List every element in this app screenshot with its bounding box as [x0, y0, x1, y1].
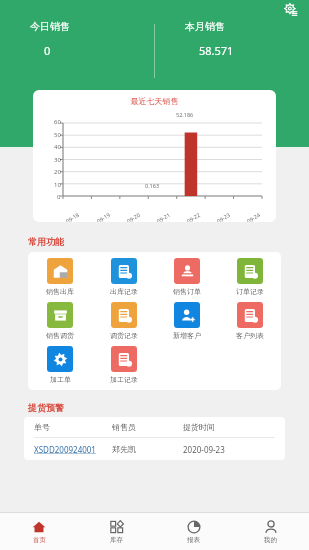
staticText: 本月销售 — [185, 20, 225, 33]
staticText: 09-18 — [64, 211, 81, 222]
button[interactable]: 今日销售 — [0, 20, 154, 58]
button[interactable]: 库存 — [78, 513, 155, 550]
button[interactable]: 销售订单 — [155, 258, 218, 296]
staticText: 今日销售 — [30, 20, 70, 33]
staticText: 0 — [57, 193, 61, 201]
staticText: 58.571 — [199, 43, 234, 58]
staticText: 库存 — [110, 536, 123, 544]
staticText: 我的 — [264, 536, 277, 544]
button[interactable]: 首页 — [0, 513, 78, 550]
button[interactable]: 加工单 — [28, 346, 92, 384]
button[interactable]: 本月销售 — [155, 20, 309, 58]
staticText: 常用功能 — [28, 236, 64, 247]
staticText: 订单记录 — [236, 287, 264, 296]
staticText: 09-21 — [155, 211, 172, 222]
button[interactable]: 订单记录 — [218, 258, 281, 296]
button[interactable]: XSDD200924001 — [34, 438, 275, 460]
staticText: 09-19 — [95, 211, 112, 222]
button[interactable]: Settings — [281, 0, 301, 20]
staticText: 40 — [54, 143, 61, 151]
staticText: 销售员 — [112, 422, 183, 432]
staticText: 销售调货 — [46, 331, 74, 340]
button[interactable]: 加工记录 — [92, 346, 155, 384]
staticText: 新增客户 — [173, 331, 201, 340]
staticText: 09-24 — [245, 211, 262, 222]
staticText: XSDD200924001 — [34, 444, 112, 455]
staticText: 出库记录 — [110, 287, 138, 296]
staticText: 提货时间 — [183, 422, 275, 432]
button[interactable]: 销售调货 — [28, 302, 92, 340]
staticText: 30 — [54, 156, 61, 164]
button[interactable]: 出库记录 — [92, 258, 155, 296]
button[interactable]: 调货记录 — [92, 302, 155, 340]
staticText: 销售出库 — [46, 287, 74, 296]
staticText: 52.186 — [176, 111, 194, 118]
staticText: 调货记录 — [110, 331, 138, 340]
staticText: 客户列表 — [236, 331, 264, 340]
staticText: 最近七天销售 — [33, 96, 276, 106]
staticText: 单号 — [34, 422, 112, 432]
button[interactable]: 报表 — [155, 513, 232, 550]
button[interactable]: 销售出库 — [28, 258, 92, 296]
staticText: 0.163 — [145, 182, 160, 189]
staticText: 销售订单 — [173, 287, 201, 296]
staticText: 郑先凯 — [112, 444, 183, 454]
staticText: 0 — [44, 43, 51, 58]
staticText: 50 — [54, 131, 61, 139]
staticText: 09-20 — [125, 211, 142, 222]
staticText: 09-23 — [215, 211, 232, 222]
staticText: 提货预警 — [28, 402, 64, 413]
staticText: 2020-09-23 — [183, 444, 275, 455]
staticText: 加工单 — [50, 375, 71, 384]
staticText: 首页 — [33, 536, 46, 544]
button[interactable]: 我的 — [232, 513, 309, 550]
staticText: 09-22 — [185, 211, 202, 222]
staticText: 加工记录 — [110, 375, 138, 384]
staticText: 报表 — [187, 536, 200, 544]
button[interactable]: 新增客户 — [155, 302, 218, 340]
staticText: 20 — [54, 168, 61, 176]
button[interactable]: 客户列表 — [218, 302, 281, 340]
staticText: 10 — [54, 181, 61, 189]
staticText: 60 — [54, 118, 61, 126]
